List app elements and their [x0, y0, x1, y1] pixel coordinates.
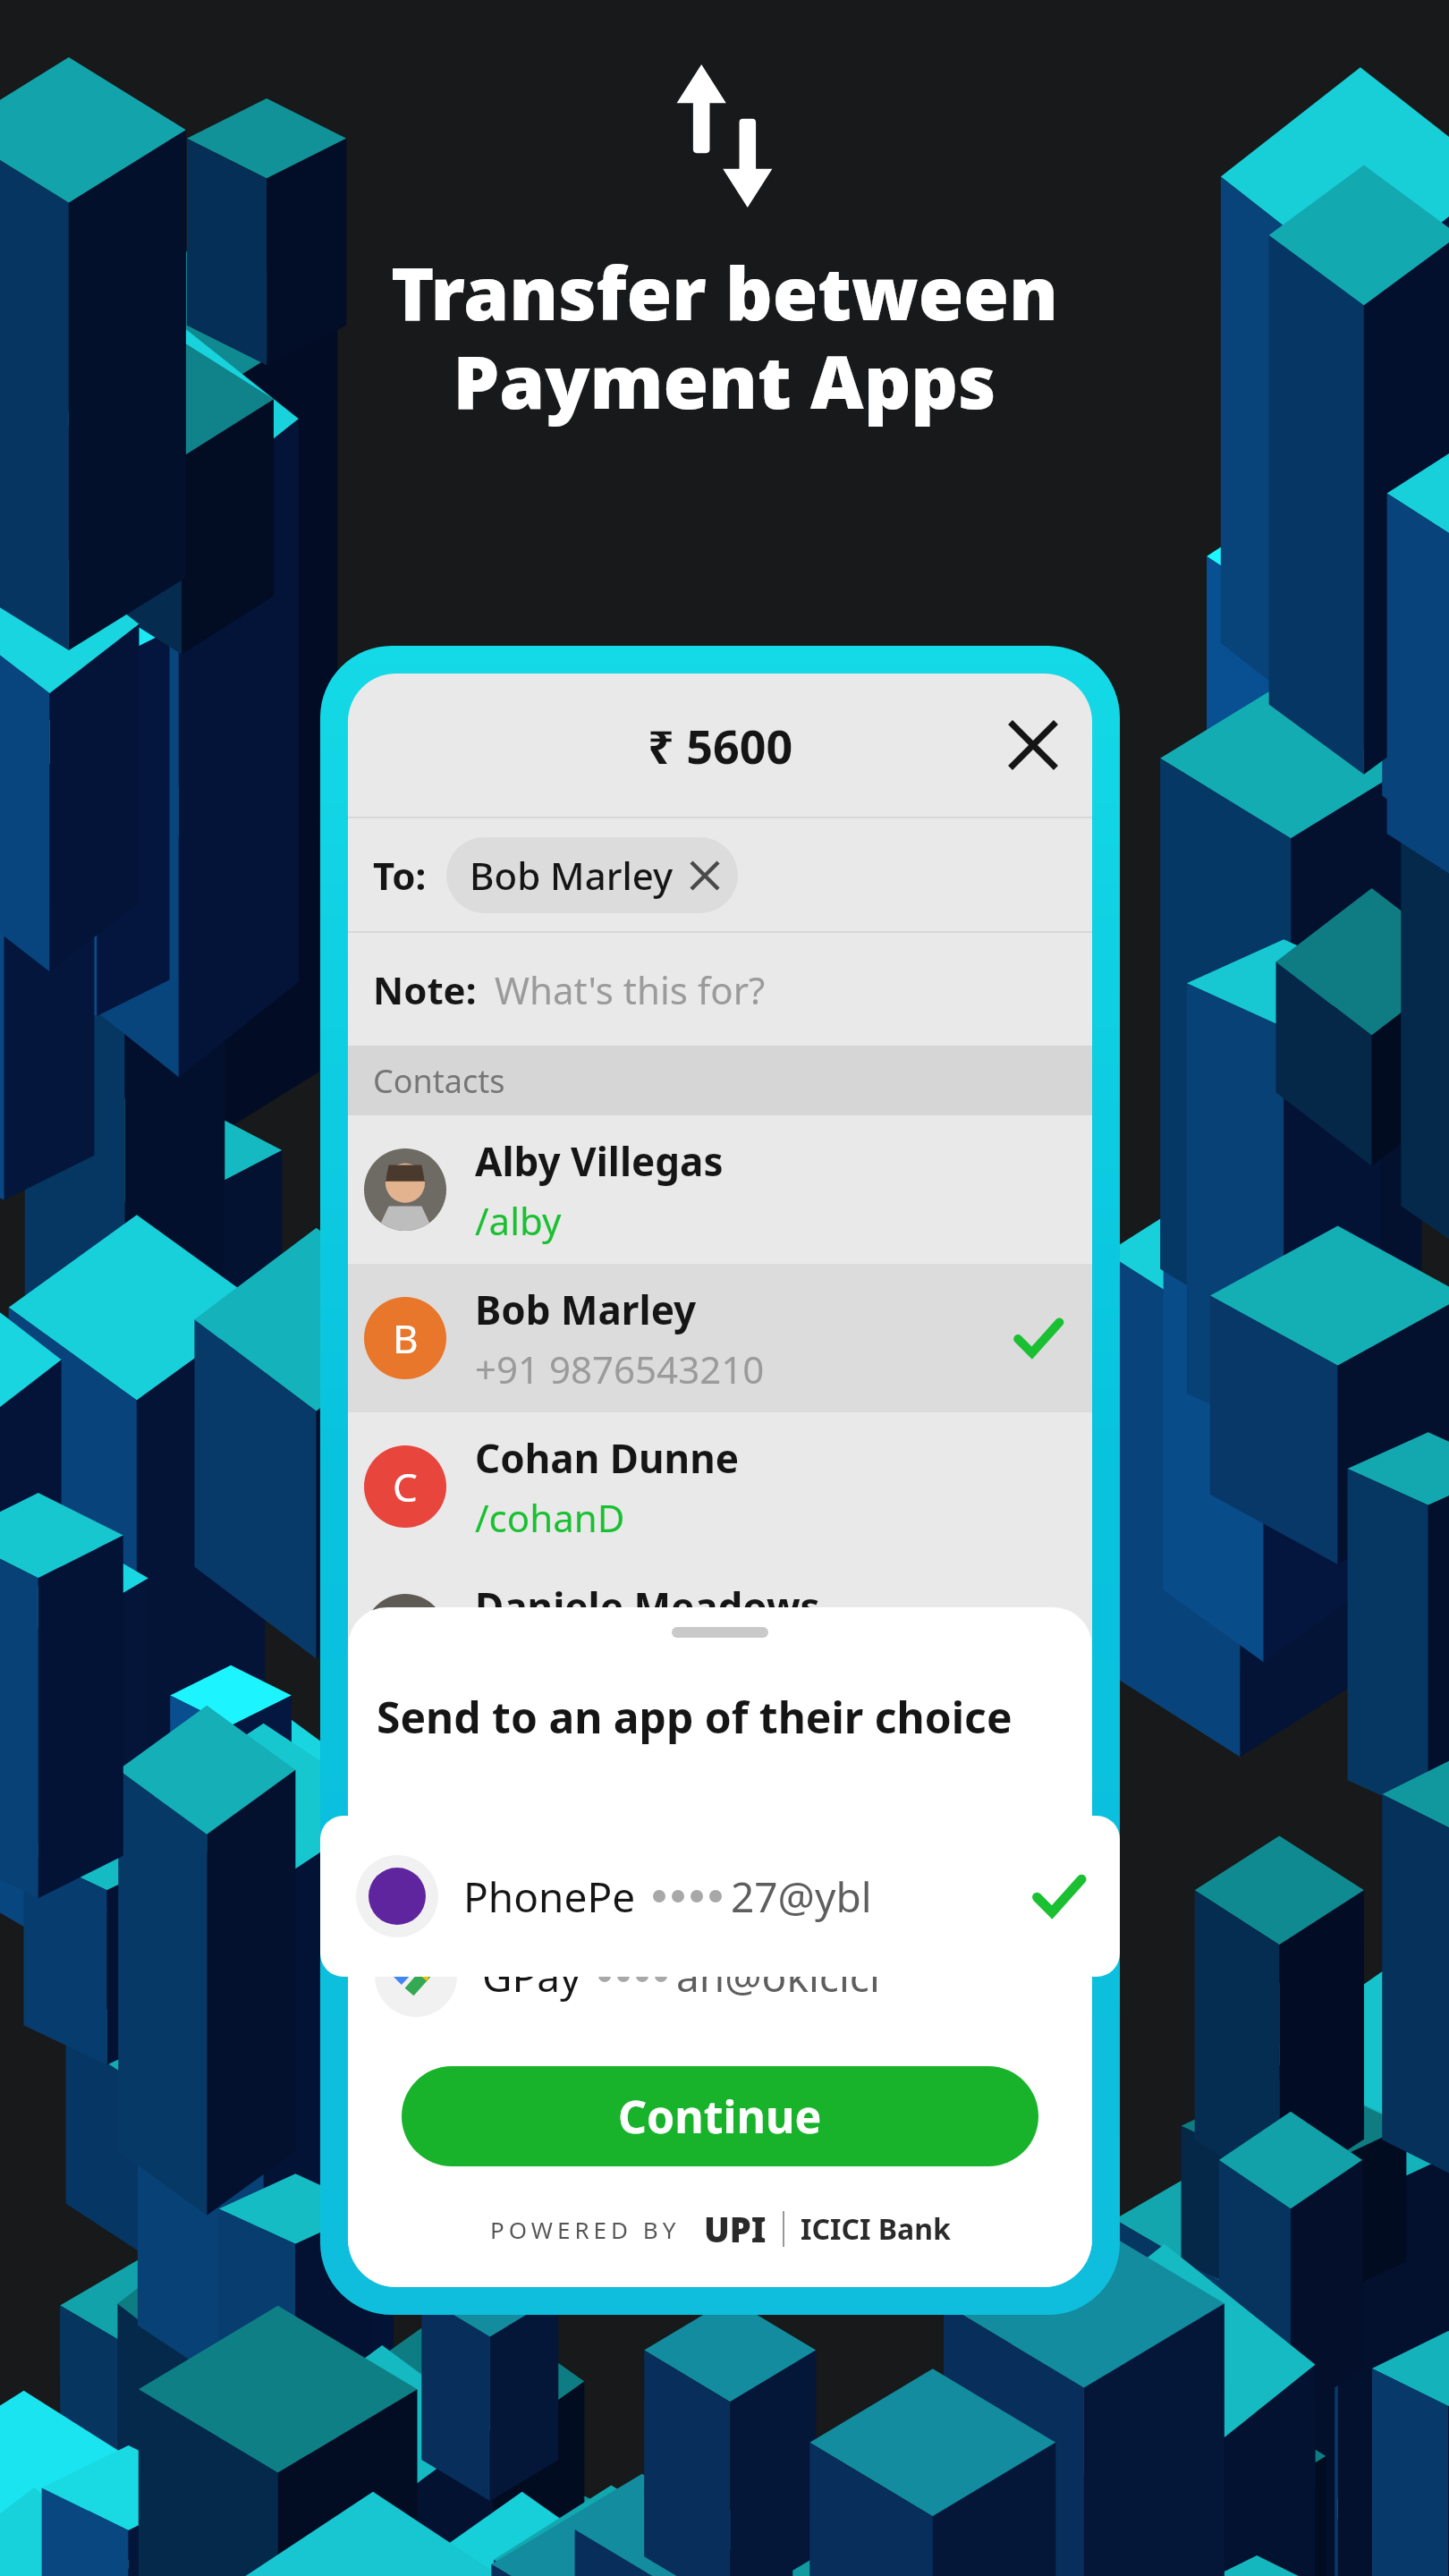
staticText: an@okicici: [676, 1948, 880, 2004]
staticText: Bob Marley: [475, 1283, 697, 1336]
staticText: POWERED BY: [490, 2214, 681, 2245]
staticText: Transfer between Payment Apps: [391, 241, 1058, 430]
staticText: Bob Marley: [470, 850, 674, 901]
button[interactable]: C: [348, 1412, 1092, 1561]
staticText: B: [393, 1311, 419, 1365]
button[interactable]: Continue: [402, 2066, 1038, 2166]
staticText: Alby Villegas: [475, 1134, 724, 1188]
staticText: Daniele Meadows: [475, 1580, 820, 1633]
staticText: C: [393, 1460, 418, 1513]
staticText: /alby: [475, 1195, 562, 1246]
button[interactable]: Close: [999, 711, 1067, 779]
staticText: What's this for?: [495, 964, 766, 1015]
staticText: Continue: [618, 2086, 822, 2147]
staticText: ICICI Bank: [801, 2209, 951, 2249]
staticText: UPI: [704, 2206, 767, 2252]
button[interactable]: Daniele Meadows: [348, 1561, 1092, 1709]
staticText: /cohanD: [475, 1492, 625, 1543]
staticText: To:: [373, 850, 427, 901]
staticText: PhonePe: [463, 1868, 636, 1925]
button[interactable]: PhonePe: [320, 1816, 1120, 1977]
staticText: Contacts: [373, 1059, 505, 1103]
button[interactable]: Bob Marley: [446, 837, 738, 913]
staticText: GPay: [482, 1948, 581, 2004]
staticText: Send to an app of their choice: [377, 1688, 1013, 1746]
staticText: Note:: [373, 964, 477, 1015]
staticText: Cohan Dunne: [475, 1431, 740, 1485]
button[interactable]: B: [348, 1264, 1092, 1412]
staticText: +91 9876543210: [475, 1343, 765, 1394]
staticText: ₹ 5600: [648, 714, 793, 777]
button[interactable]: Alby Villegas: [348, 1115, 1092, 1264]
button[interactable]: GPay: [375, 1909, 1065, 2043]
staticText: 27@ybl: [731, 1868, 872, 1925]
